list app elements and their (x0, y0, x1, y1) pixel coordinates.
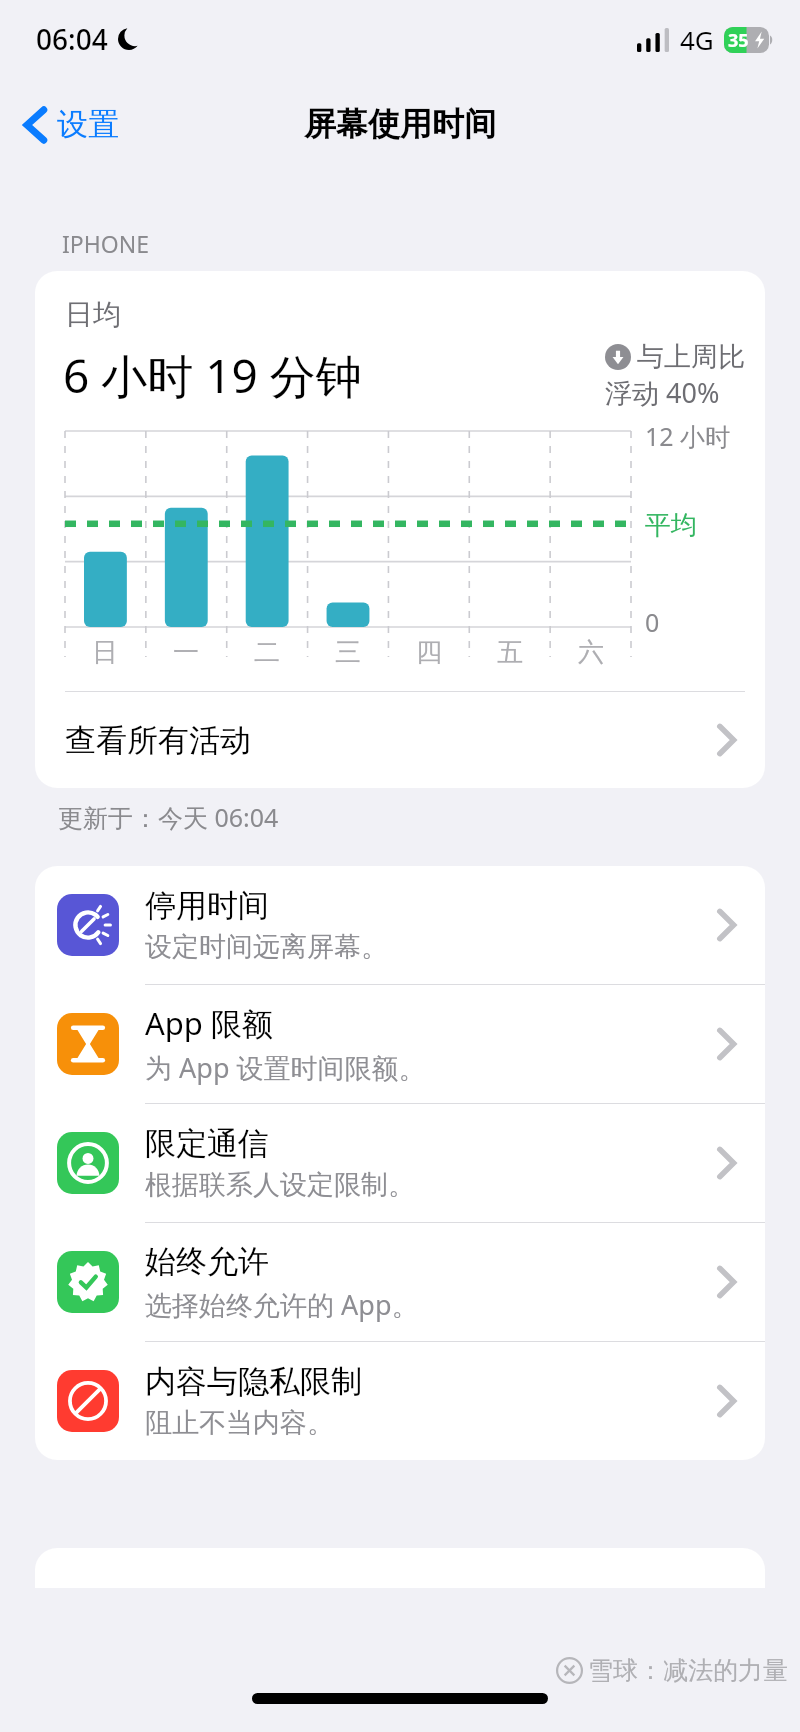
staticText: 限定通信 (145, 1124, 269, 1163)
staticText: 设定时间远离屏幕。 (145, 930, 388, 964)
button[interactable]: 设置 (16, 97, 127, 152)
staticText: 根据联系人设定限制。 (145, 1168, 415, 1202)
staticText: 为 App 设置时间限额。 (145, 1049, 426, 1086)
button[interactable]: 内容与隐私限制 (35, 1342, 765, 1460)
button[interactable]: 限定通信 (35, 1104, 765, 1222)
staticText: 停用时间 (145, 886, 269, 925)
staticText: 日 (92, 636, 118, 669)
staticText: 0 (645, 605, 660, 639)
staticText: 设置 (57, 105, 119, 144)
staticText: 4G (680, 22, 714, 57)
staticText: 选择始终允许的 App。 (145, 1286, 419, 1323)
staticText: 雪球：减法的力量 (588, 1655, 788, 1686)
staticText: 查看所有活动 (65, 721, 251, 760)
staticText: IPHONE (62, 228, 149, 259)
staticText: 五 (497, 636, 523, 669)
button[interactable]: 始终允许 (35, 1223, 765, 1341)
staticText: 四 (416, 636, 442, 669)
staticText: 日均 (65, 297, 121, 332)
staticText: 屏幕使用时间 (304, 104, 496, 144)
button[interactable]: 查看所有活动 (35, 692, 765, 788)
staticText: 六 (578, 636, 604, 669)
staticText: 三 (335, 636, 361, 669)
staticText: 06:04 (36, 20, 108, 58)
staticText: 35 (728, 28, 749, 53)
staticText: 平均 (645, 509, 697, 542)
staticText: 更新于：今天 06:04 (58, 800, 279, 834)
button[interactable]: App 限额 (35, 985, 765, 1103)
button[interactable]: 停用时间 (35, 866, 765, 984)
staticText: 与上周比 (637, 340, 745, 374)
staticText: 12 小时 (645, 419, 731, 453)
staticText: 浮动 40% (605, 374, 720, 411)
staticText: 阻止不当内容。 (145, 1406, 334, 1440)
staticText: 二 (254, 636, 280, 669)
staticText: 6 小时 19 分钟 (63, 344, 362, 407)
staticText: App 限额 (145, 1002, 273, 1044)
staticText: 始终允许 (145, 1242, 269, 1281)
staticText: 一 (173, 636, 199, 669)
staticText: 内容与隐私限制 (145, 1362, 362, 1401)
